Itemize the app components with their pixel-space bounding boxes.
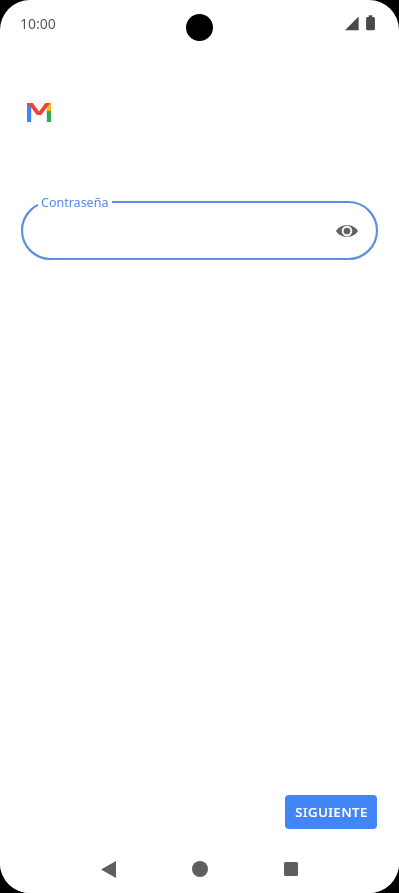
button[interactable]: Mostrar contraseña: [329, 213, 365, 249]
staticText: SIGUIENTE: [295, 803, 368, 821]
button[interactable]: Inicio: [176, 845, 224, 893]
button[interactable]: Contraseña: [22, 202, 377, 259]
staticText: 10:00: [20, 14, 56, 33]
staticText: Contraseña: [41, 194, 109, 211]
button[interactable]: SIGUIENTE: [285, 795, 377, 829]
button[interactable]: Aplicaciones recientes: [267, 845, 315, 893]
button[interactable]: Atrás: [84, 845, 132, 893]
